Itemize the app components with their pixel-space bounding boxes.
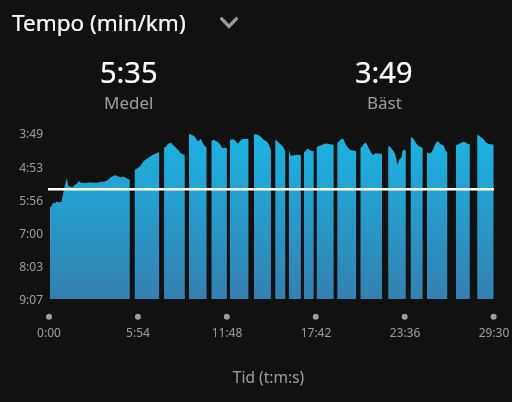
staticText: 7:00 <box>0 225 43 402</box>
staticText: 0:00 <box>9 324 89 402</box>
staticText: 5:35 <box>100 52 158 91</box>
staticText: 3:49 <box>355 52 413 91</box>
staticText: 3:49 <box>0 125 43 402</box>
staticText: 9:07 <box>0 291 43 402</box>
staticText: 4:53 <box>0 159 43 402</box>
staticText: 11:48 <box>187 324 267 402</box>
button[interactable]: Change metric <box>214 8 244 38</box>
staticText: 17:42 <box>276 324 356 402</box>
staticText: 8:03 <box>0 258 43 402</box>
staticText: Tempo (min/km) <box>12 7 186 38</box>
staticText: Bäst <box>367 91 402 114</box>
staticText: 5:56 <box>0 192 43 402</box>
staticText: Tid (t:m:s) <box>208 366 329 402</box>
staticText: Medel <box>104 91 154 114</box>
staticText: 29:30 <box>454 324 512 402</box>
staticText: 23:36 <box>365 324 445 402</box>
staticText: 5:54 <box>98 324 178 402</box>
